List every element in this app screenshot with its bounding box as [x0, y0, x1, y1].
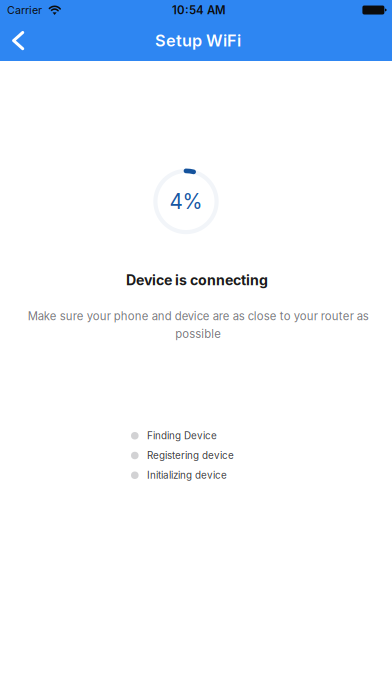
staticText: 10:54 AM	[172, 3, 226, 17]
staticText: Registering device	[147, 449, 234, 461]
staticText: Carrier	[7, 3, 42, 16]
button[interactable]: Back	[0, 20, 36, 61]
staticText: Initializing device	[147, 469, 227, 481]
staticText: Device is connecting	[126, 271, 268, 288]
staticText: 4%	[169, 189, 202, 214]
staticText: Setup WiFi	[155, 31, 241, 50]
staticText: Make sure your phone and device are as c…	[27, 309, 368, 341]
staticText: Finding Device	[147, 430, 217, 442]
